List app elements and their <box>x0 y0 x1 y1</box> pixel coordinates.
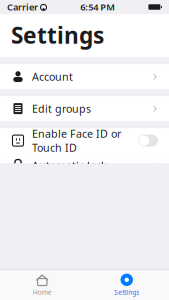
button[interactable]: Edit groups <box>0 96 169 121</box>
staticText: Home <box>33 288 52 297</box>
button[interactable]: Home <box>0 270 84 300</box>
staticText: Enable Face ID or Touch ID <box>32 126 121 155</box>
staticText: Edit groups <box>32 101 91 116</box>
button[interactable]: Enable Face ID or Touch ID <box>0 128 169 153</box>
staticText: Account <box>32 69 73 84</box>
staticText: Settings <box>114 288 139 297</box>
staticText: Automatic lock <box>32 158 107 173</box>
staticText: 6:54 PM <box>80 1 115 13</box>
button[interactable]: Account <box>0 64 169 89</box>
button[interactable]: Settings <box>84 270 169 300</box>
staticText: Settings <box>11 20 104 50</box>
staticText: Carrier <box>7 1 38 13</box>
button[interactable]: Automatic lock <box>0 153 169 178</box>
